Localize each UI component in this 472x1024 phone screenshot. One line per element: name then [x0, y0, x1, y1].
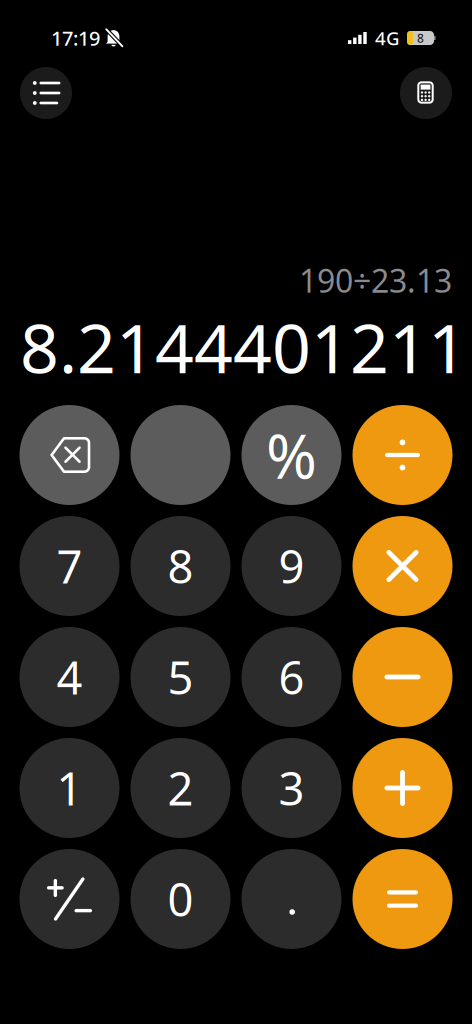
button[interactable]: 1	[19, 738, 119, 838]
button[interactable]: Multiply	[352, 516, 452, 616]
button[interactable]: 0	[130, 849, 230, 949]
button[interactable]: Divide	[352, 405, 452, 505]
button[interactable]: Decimal point	[241, 849, 341, 949]
button[interactable]: Toggle sign	[19, 849, 119, 949]
button[interactable]: Calculator	[400, 67, 452, 119]
button[interactable]: 5	[130, 627, 230, 727]
staticText: %	[266, 414, 317, 496]
button[interactable]: 3	[241, 738, 341, 838]
button[interactable]: 4	[19, 627, 119, 727]
staticText: 5	[167, 647, 193, 707]
staticText: 1	[56, 758, 82, 818]
staticText: 6	[278, 647, 304, 707]
button[interactable]: Equals	[352, 849, 452, 949]
button[interactable]: %	[241, 405, 341, 505]
button[interactable]: 6	[241, 627, 341, 727]
button[interactable]: Add	[352, 738, 452, 838]
button[interactable]: Clear	[130, 405, 230, 505]
staticText: 17:19	[51, 25, 100, 51]
staticText: 8	[417, 30, 424, 46]
button[interactable]: 2	[130, 738, 230, 838]
staticText: 4	[56, 647, 82, 707]
button[interactable]: Subtract	[352, 627, 452, 727]
staticText: 2	[167, 758, 193, 818]
staticText: 9	[278, 536, 304, 596]
staticText: 7	[56, 536, 82, 596]
staticText: 8	[167, 536, 193, 596]
button[interactable]: 8	[130, 516, 230, 616]
staticText: 8.2144401211	[20, 302, 467, 392]
button[interactable]: Delete	[19, 405, 119, 505]
button[interactable]: 7	[19, 516, 119, 616]
staticText: 4G	[375, 26, 400, 50]
button[interactable]: 9	[241, 516, 341, 616]
staticText: 190÷23.13	[299, 259, 452, 302]
staticText: 3	[278, 758, 304, 818]
button[interactable]: History	[20, 67, 72, 119]
staticText: 0	[167, 869, 193, 929]
